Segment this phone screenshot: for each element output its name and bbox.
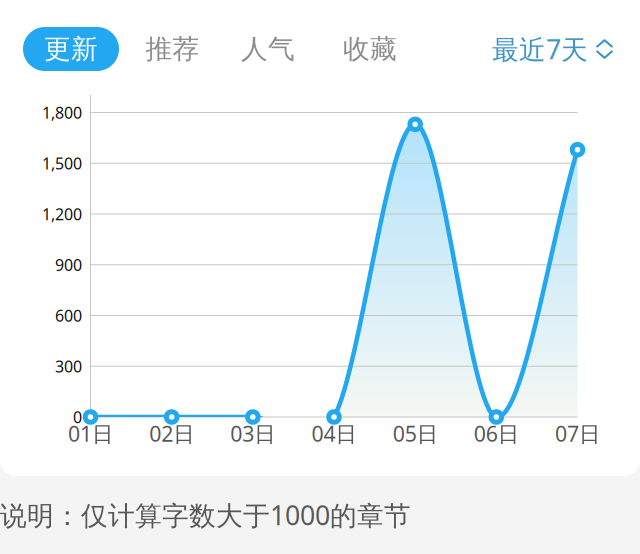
staticText: 推荐 [145, 33, 199, 65]
staticText: 05日 [393, 419, 438, 448]
staticText: 04日 [311, 419, 356, 448]
staticText: 更新 [44, 33, 98, 65]
staticText: 1,500 [42, 153, 82, 174]
staticText: 01日 [68, 419, 113, 448]
button[interactable]: 人气 [229, 27, 307, 71]
staticText: 收藏 [343, 33, 397, 65]
staticText: 02日 [149, 419, 194, 448]
staticText: 说明：仅计算字数大于1000的章节 [0, 497, 411, 533]
staticText: 人气 [241, 33, 295, 65]
staticText: 1,200 [42, 203, 82, 225]
staticText: 300 [55, 356, 82, 377]
staticText: 07日 [555, 419, 600, 448]
staticText: 600 [55, 305, 82, 326]
button[interactable]: 推荐 [133, 27, 211, 71]
button[interactable]: 收藏 [331, 27, 409, 71]
staticText: 0 [73, 406, 82, 428]
staticText: 最近7天 [492, 31, 588, 67]
staticText: 1,800 [42, 102, 82, 123]
staticText: 06日 [474, 419, 519, 448]
button[interactable]: 最近7天 [484, 27, 620, 71]
button[interactable]: 说明：仅计算字数大于1000的章节 [0, 493, 640, 537]
staticText: 900 [55, 254, 82, 275]
button[interactable]: 更新 [23, 27, 119, 71]
staticText: 03日 [230, 419, 275, 448]
